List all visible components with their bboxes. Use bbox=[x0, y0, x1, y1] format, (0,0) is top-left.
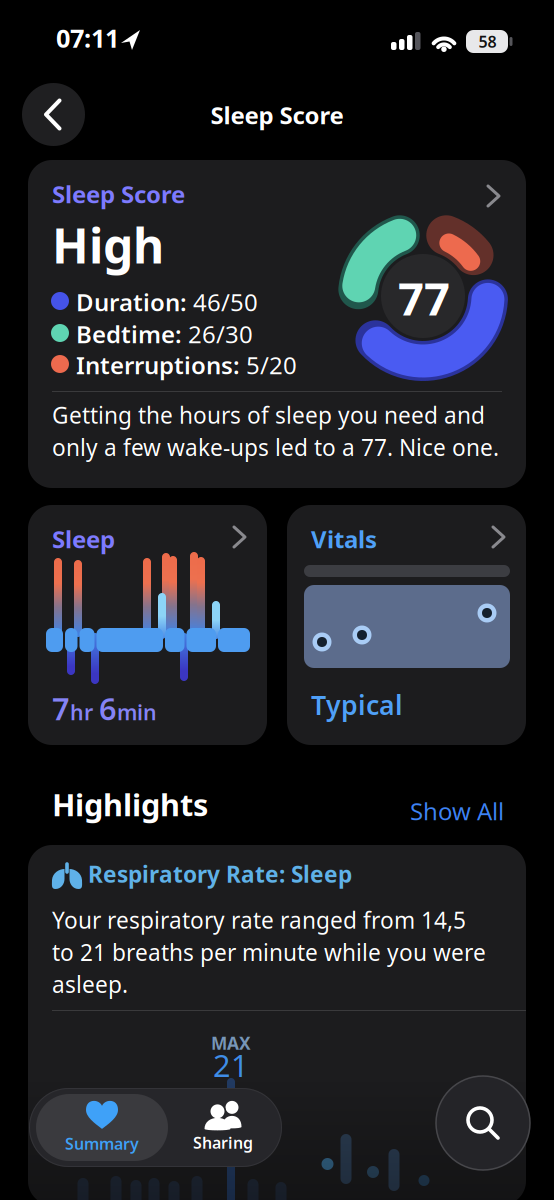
staticText: Sleep Score bbox=[210, 99, 343, 131]
staticText: Typical bbox=[311, 687, 403, 722]
staticText: 21 bbox=[213, 1045, 249, 1085]
button[interactable]: Sleep bbox=[28, 505, 267, 745]
staticText: Summary bbox=[65, 1133, 139, 1154]
button[interactable]: Sleep Score bbox=[28, 160, 526, 488]
staticText: 77 bbox=[398, 268, 450, 328]
staticText: High bbox=[52, 213, 164, 277]
staticText: Bedtime: 26/30 bbox=[76, 318, 253, 350]
staticText: Sharing bbox=[193, 1132, 253, 1153]
staticText: Interruptions: 5/20 bbox=[76, 349, 297, 381]
staticText: Getting the hours of sleep you need and … bbox=[52, 400, 499, 462]
button[interactable]: Summary bbox=[36, 1094, 168, 1161]
staticText: Sleep bbox=[52, 523, 115, 555]
staticText: Highlights bbox=[52, 784, 208, 825]
button[interactable]: Back bbox=[22, 83, 85, 146]
staticText: MAX bbox=[211, 1031, 251, 1054]
staticText: 07:11 bbox=[56, 21, 119, 55]
staticText: 7hr 6min bbox=[52, 688, 157, 729]
button[interactable]: Show All bbox=[410, 795, 504, 827]
staticText: 58 bbox=[478, 31, 496, 52]
staticText: Your respiratory rate ranged from 14,5 t… bbox=[52, 905, 486, 999]
staticText: Sleep Score bbox=[52, 178, 185, 210]
staticText: Duration: 46/50 bbox=[76, 286, 258, 318]
button[interactable]: Search bbox=[436, 1076, 530, 1170]
button[interactable]: Vitals bbox=[287, 505, 526, 745]
button[interactable]: Respiratory Rate: Sleep bbox=[28, 845, 526, 1200]
staticText: Show All bbox=[410, 795, 504, 827]
button[interactable]: Sharing bbox=[168, 1094, 278, 1160]
staticText: Respiratory Rate: Sleep bbox=[88, 859, 352, 889]
staticText: Vitals bbox=[311, 523, 377, 555]
